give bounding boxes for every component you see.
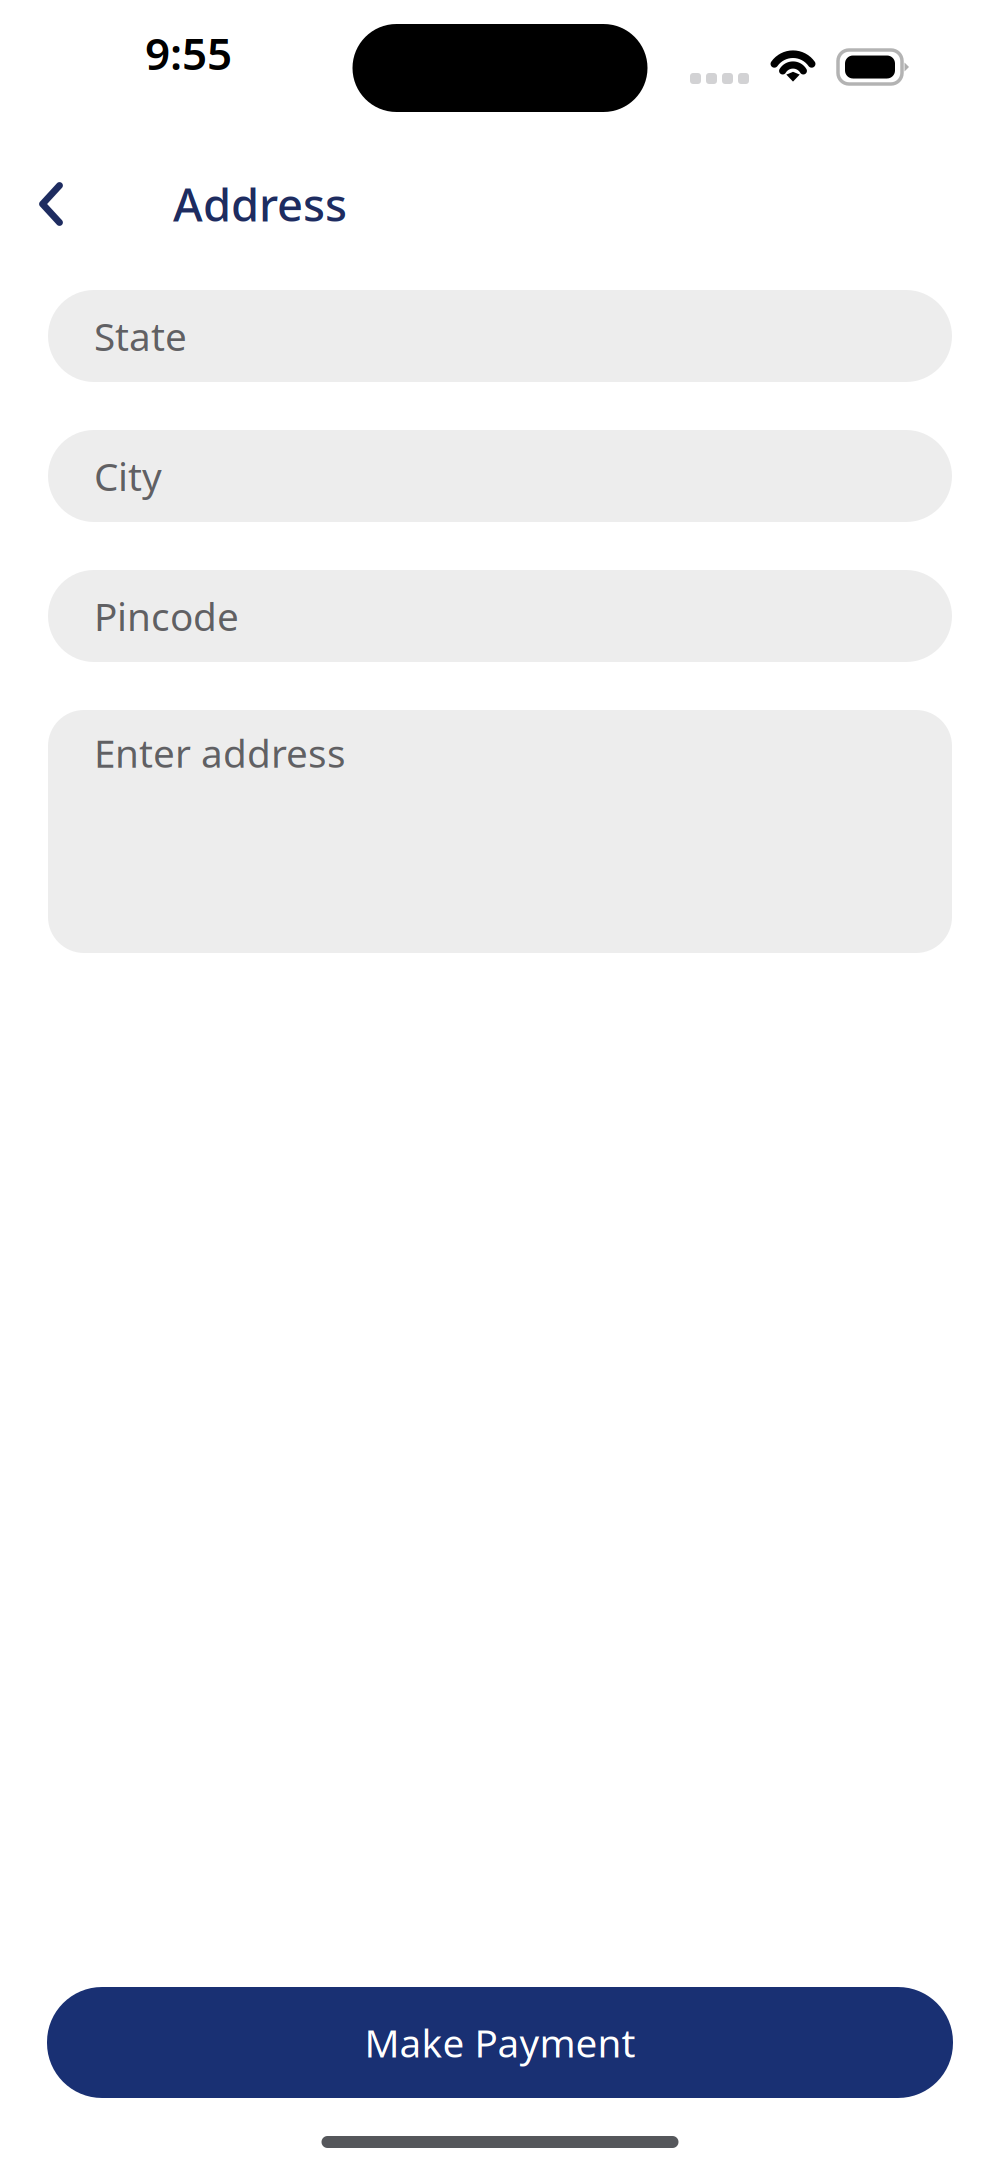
- staticText: City: [94, 450, 162, 502]
- button[interactable]: State: [48, 290, 952, 382]
- staticText: Pincode: [94, 590, 239, 642]
- staticText: Make Payment: [364, 2017, 635, 2068]
- staticText: Address: [173, 174, 347, 234]
- staticText: 9:55: [145, 24, 232, 82]
- button[interactable]: Enter address: [48, 710, 952, 953]
- button[interactable]: Pincode: [48, 570, 952, 662]
- staticText: Enter address: [94, 727, 346, 778]
- staticText: State: [94, 310, 187, 362]
- button[interactable]: Back: [0, 161, 173, 247]
- button[interactable]: Make Payment: [47, 1987, 953, 2098]
- button[interactable]: City: [48, 430, 952, 522]
